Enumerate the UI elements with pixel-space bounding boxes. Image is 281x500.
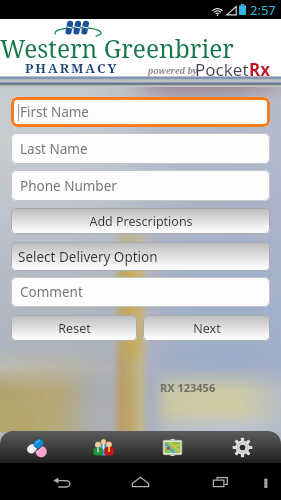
button[interactable]: Phone Number: [11, 170, 270, 201]
staticText: Pocket: [195, 58, 249, 81]
staticText: Last Name: [20, 140, 88, 158]
button[interactable]: Prescriptions: [5, 431, 69, 463]
button[interactable]: Add Prescriptions: [11, 208, 270, 234]
button[interactable]: Next: [143, 315, 270, 341]
staticText: Western Greenbrier: [0, 32, 234, 65]
staticText: powered by: [148, 65, 198, 77]
button[interactable]: Store locations: [140, 431, 204, 463]
button[interactable]: Reset: [11, 315, 137, 341]
button[interactable]: Recent apps: [196, 463, 244, 500]
button[interactable]: Family members: [71, 431, 135, 463]
staticText: 2:57: [250, 1, 276, 19]
button[interactable]: Back: [38, 463, 86, 500]
button[interactable]: First Name: [11, 97, 270, 127]
button[interactable]: Settings: [210, 431, 274, 463]
staticText: First Name: [20, 103, 89, 121]
button[interactable]: Home: [116, 463, 164, 500]
staticText: RX 123456: [160, 380, 216, 395]
button[interactable]: Select Delivery Option: [11, 242, 270, 271]
button[interactable]: More options: [242, 463, 281, 500]
staticText: Comment: [20, 283, 83, 301]
button[interactable]: Comment: [11, 277, 270, 307]
staticText: Add Prescriptions: [89, 213, 193, 230]
staticText: PHARMACY: [25, 59, 119, 77]
button[interactable]: Last Name: [11, 133, 270, 164]
staticText: Select Delivery Option: [18, 248, 158, 266]
staticText: Rx: [249, 58, 270, 81]
staticText: Next: [193, 320, 221, 337]
staticText: Reset: [58, 320, 91, 337]
staticText: Phone Number: [20, 177, 117, 195]
